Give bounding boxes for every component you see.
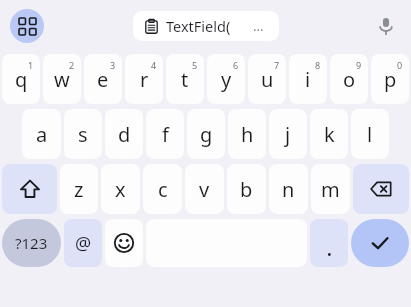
staticText: .	[327, 238, 332, 261]
staticText: h	[241, 121, 254, 148]
staticText: o	[343, 66, 356, 93]
button[interactable]: j	[269, 109, 307, 159]
button[interactable]: .	[310, 219, 348, 267]
button[interactable]: w	[43, 54, 81, 104]
staticText: f	[162, 121, 169, 148]
button[interactable]: k	[310, 109, 348, 159]
staticText: a	[36, 121, 48, 148]
button[interactable]: t	[166, 54, 204, 104]
staticText: x	[115, 176, 126, 203]
button[interactable]: o	[330, 54, 368, 104]
button[interactable]: c	[143, 164, 182, 214]
staticText: 8	[315, 59, 321, 71]
button[interactable]: ?123	[2, 219, 61, 267]
staticText: 3	[110, 59, 116, 71]
staticText: 1	[28, 59, 34, 71]
staticText: r	[140, 66, 149, 93]
button[interactable]: Shift	[2, 164, 57, 214]
button[interactable]: Emoji	[105, 219, 143, 267]
button[interactable]: l	[351, 109, 389, 159]
staticText: 2	[69, 59, 75, 71]
staticText: g	[200, 121, 213, 148]
staticText: 7	[274, 59, 280, 71]
button[interactable]: m	[311, 164, 350, 214]
staticText: z	[74, 176, 84, 203]
staticText: 5	[192, 59, 198, 71]
button[interactable]: z	[60, 164, 98, 214]
button[interactable]: b	[227, 164, 266, 214]
staticText: l	[367, 121, 373, 148]
button[interactable]: v	[185, 164, 224, 214]
staticText: v	[199, 176, 210, 203]
staticText: @	[75, 231, 92, 256]
staticText: s	[78, 121, 88, 148]
staticText: 4	[151, 59, 157, 71]
staticText: 9	[356, 59, 362, 71]
button[interactable]: i	[289, 54, 327, 104]
staticText: k	[324, 121, 335, 148]
button[interactable]: x	[101, 164, 140, 214]
staticText: e	[97, 66, 109, 93]
button[interactable]: Backspace	[353, 164, 409, 214]
staticText: n	[282, 176, 295, 203]
button[interactable]: e	[84, 54, 122, 104]
staticText: i	[305, 66, 311, 93]
button[interactable]: @	[64, 219, 102, 267]
button[interactable]: Voice input	[369, 9, 403, 43]
button[interactable]: u	[248, 54, 286, 104]
button[interactable]: TextField(	[133, 11, 279, 41]
staticText: j	[285, 121, 291, 148]
staticText: m	[321, 176, 340, 203]
staticText: q	[15, 66, 28, 93]
button[interactable]: d	[105, 109, 143, 159]
staticText: t	[181, 66, 189, 93]
staticText: 6	[233, 59, 239, 71]
staticText: b	[240, 176, 253, 203]
button[interactable]: h	[228, 109, 266, 159]
staticText: d	[118, 121, 131, 148]
button[interactable]: q	[2, 54, 40, 104]
button[interactable]: Enter	[351, 219, 409, 267]
staticText: p	[384, 66, 397, 93]
staticText: ?123	[15, 233, 48, 253]
button[interactable]: s	[64, 109, 102, 159]
staticText: u	[261, 66, 274, 93]
staticText: ...	[253, 17, 264, 35]
button[interactable]: r	[125, 54, 163, 104]
button[interactable]: n	[269, 164, 308, 214]
button[interactable]: Apps	[10, 9, 44, 43]
staticText: TextField(	[166, 16, 231, 36]
staticText: w	[54, 66, 70, 93]
button[interactable]: f	[146, 109, 184, 159]
button[interactable]: p	[371, 54, 409, 104]
button[interactable]: a	[22, 109, 61, 159]
staticText: y	[221, 66, 232, 93]
staticText: 0	[397, 59, 403, 71]
button[interactable]: g	[187, 109, 225, 159]
staticText: c	[158, 176, 168, 203]
button[interactable]: y	[207, 54, 245, 104]
